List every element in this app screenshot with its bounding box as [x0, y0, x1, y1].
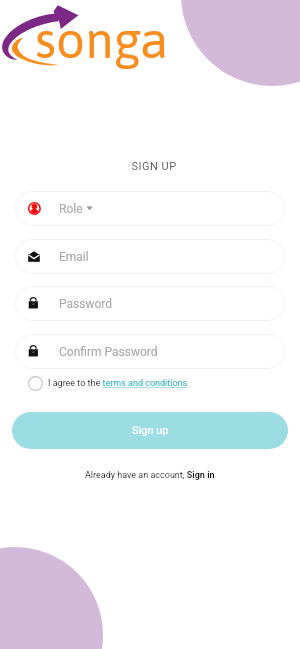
staticText: Sign up — [132, 424, 169, 437]
button[interactable]: Sign up — [12, 412, 288, 449]
staticText: I agree to the terms and conditions — [48, 378, 188, 389]
staticText: songa — [35, 10, 169, 68]
button[interactable]: Already have an account, Sign in — [0, 466, 300, 484]
button[interactable]: Password — [15, 286, 285, 321]
staticText: Confirm Password — [59, 345, 158, 359]
button[interactable]: Accept terms — [28, 375, 188, 392]
other: Accept terms — [28, 376, 43, 391]
staticText: Already have an account, Sign in — [85, 470, 215, 481]
staticText: Password — [59, 297, 113, 311]
button[interactable]: Confirm Password — [15, 334, 285, 369]
staticText: Role — [59, 202, 83, 216]
staticText: SIGN UP — [4, 160, 300, 173]
button[interactable]: Email — [15, 239, 285, 274]
button[interactable]: Role — [15, 191, 285, 226]
staticText: Email — [59, 250, 89, 264]
